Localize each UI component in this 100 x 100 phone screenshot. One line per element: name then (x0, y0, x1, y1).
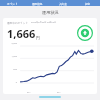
staticText: 入出金 (59, 2, 67, 5)
staticText: 円 (36, 35, 40, 40)
button[interactable]: 増加 (77, 25, 93, 41)
staticText: 運用中のポイント (7, 21, 29, 24)
button[interactable]: 運用中のポイント (3, 18, 97, 94)
staticText: 5/1 (27, 90, 31, 93)
button[interactable]: 運用状況 (25, 0, 50, 6)
button[interactable]: ポイント (0, 0, 25, 6)
staticText: 1,666 (7, 26, 36, 41)
staticText: 2,000 (5, 42, 17, 45)
staticText: 1,000 (5, 55, 17, 58)
staticText: 6/1 (57, 90, 61, 93)
staticText: 運用状況 (42, 10, 59, 15)
button[interactable]: 詳細 (39, 96, 61, 98)
staticText: ポイント (7, 2, 18, 5)
staticText: 500 (5, 68, 17, 71)
staticText: 0 (5, 81, 17, 84)
button[interactable]: 入出金 (50, 0, 75, 6)
staticText: 2023年6月23日 20時13分 (31, 21, 57, 24)
staticText: 設定 (85, 2, 91, 5)
staticText: 運用状況 (32, 2, 43, 5)
button[interactable]: 設定 (75, 0, 100, 6)
